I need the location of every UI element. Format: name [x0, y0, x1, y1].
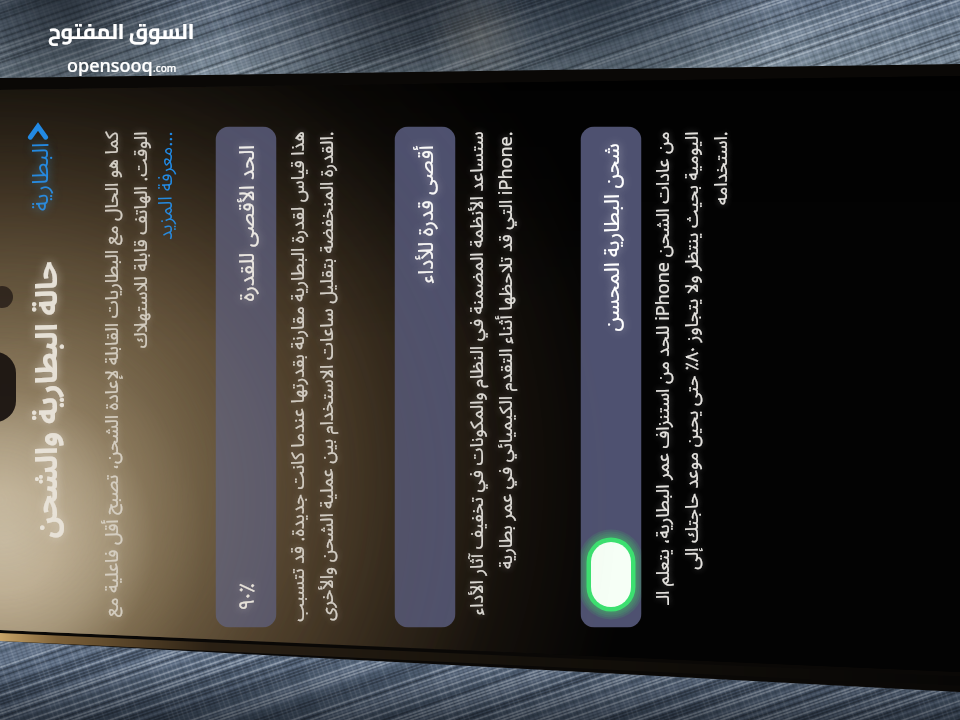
staticText: شحن البطارية المحسن [596, 142, 625, 331]
staticText: أقصى قدرة للأداء [410, 144, 439, 283]
button[interactable]: Optimized battery charging [586, 537, 635, 611]
staticText: الحد الأقصى للقدرة [231, 144, 260, 301]
staticText: البطارية [22, 142, 53, 243]
staticText: هذا قياس لقدرة البطارية مقارنة بقدرتها ع… [284, 131, 337, 631]
staticText: السوق المفتوح [48, 12, 195, 51]
button[interactable]: معرفة المزيد... [151, 131, 177, 631]
button[interactable]: Optimized battery charging [580, 126, 641, 627]
button[interactable]: ٩٠٪ [215, 126, 276, 627]
button[interactable]: أقصى قدرة للأداء [394, 126, 455, 627]
staticText: كما هو الحال مع البطاريات القابلة لإعادة… [98, 131, 151, 631]
other: Back [24, 123, 51, 140]
staticText: ٩٠٪ [231, 582, 260, 609]
staticText: حالة البطارية والشحن [24, 261, 65, 538]
staticText: للحد من استنزاف عمر البطارية، يتعلم الـ … [649, 131, 731, 631]
staticText: .com [153, 61, 177, 75]
staticText: opensooq [67, 53, 153, 78]
button[interactable]: البطارية [22, 123, 53, 243]
staticText: ستساعد الأنظمة المضمنة في النظام والمكون… [463, 131, 516, 631]
